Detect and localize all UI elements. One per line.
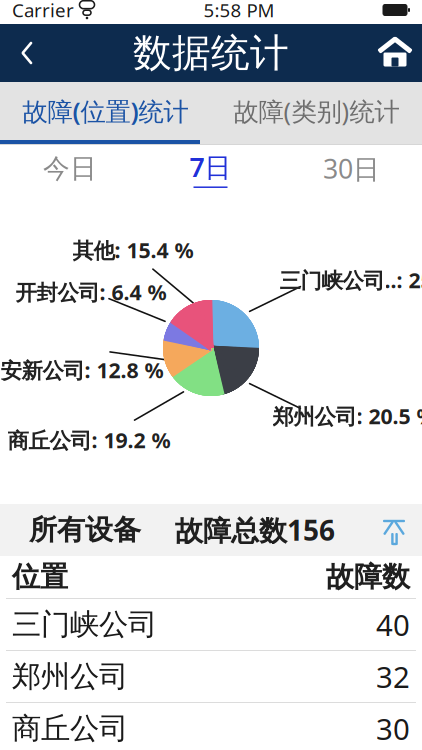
- staticText: 数据统计: [133, 29, 289, 77]
- button[interactable]: 故障(类别)统计: [211, 82, 422, 140]
- staticText: 所有设备: [29, 513, 141, 547]
- staticText: 商丘公司: 19.2 %: [7, 426, 170, 454]
- staticText: 7日: [189, 149, 231, 184]
- staticText: 30: [376, 709, 410, 748]
- staticText: Carrier: [12, 0, 74, 22]
- button[interactable]: 今日: [0, 145, 140, 192]
- staticText: 三门峡公司..: 25.: [279, 266, 422, 294]
- staticText: 故障总数156: [175, 511, 335, 549]
- staticText: 商丘公司: [12, 710, 128, 746]
- button[interactable]: Home: [368, 24, 422, 82]
- staticText: 三门峡公司: [12, 606, 157, 642]
- staticText: 其他: 15.4 %: [72, 236, 193, 264]
- staticText: 32: [376, 657, 410, 696]
- button[interactable]: 三门峡公司: [0, 598, 422, 650]
- button[interactable]: Filter: [366, 504, 422, 556]
- staticText: 故障数: [326, 560, 410, 594]
- staticText: 40: [376, 605, 410, 644]
- button[interactable]: 30日: [281, 145, 422, 192]
- button[interactable]: 商丘公司: [0, 702, 422, 750]
- staticText: 5:58 PM: [203, 0, 274, 22]
- staticText: 故障(类别)统计: [233, 94, 399, 128]
- staticText: 开封公司: 6.4 %: [15, 278, 166, 306]
- button[interactable]: 郑州公司: [0, 650, 422, 702]
- staticText: 安新公司: 12.8 %: [0, 356, 163, 384]
- staticText: 郑州公司: [12, 658, 128, 694]
- staticText: 位置: [12, 560, 68, 594]
- staticText: 郑州公司: 20.5 %: [272, 402, 422, 430]
- button[interactable]: 故障(位置)统计: [0, 82, 211, 140]
- staticText: 30日: [323, 151, 380, 186]
- button[interactable]: 7日: [140, 145, 281, 192]
- staticText: 今日: [43, 152, 97, 185]
- button[interactable]: Back: [0, 24, 54, 82]
- staticText: 故障(位置)统计: [22, 94, 188, 128]
